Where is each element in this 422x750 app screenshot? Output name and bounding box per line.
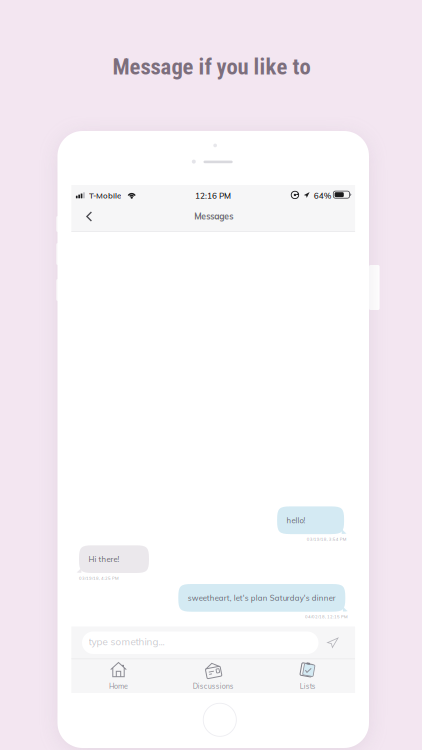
button[interactable]: Lists	[260, 658, 355, 693]
staticText: 64%	[314, 190, 332, 201]
staticText: 04/02/18, 12:15 PM	[305, 614, 348, 619]
button[interactable]: Home	[71, 658, 166, 693]
staticText: T-Mobile	[89, 191, 121, 200]
staticText: Messages	[194, 211, 233, 222]
staticText: hello!	[287, 515, 306, 525]
staticText: Home	[109, 682, 128, 691]
button[interactable]: Back	[76, 205, 98, 227]
staticText: Discussions	[193, 682, 234, 691]
staticText: Lists	[300, 682, 316, 691]
staticText: type something...	[89, 635, 165, 648]
staticText: Message if you like to	[112, 53, 310, 80]
staticText: Hi there!	[88, 554, 119, 564]
staticText: sweetheart, let's plan Saturday's dinner	[188, 593, 336, 603]
staticText: 03/19/18, 4:25 PM	[79, 575, 119, 581]
button[interactable]: Send	[327, 637, 338, 648]
staticText: 12:16 PM	[195, 190, 231, 201]
staticText: 03/19/18, 3:54 PM	[307, 536, 347, 542]
button[interactable]: Discussions	[166, 658, 260, 693]
